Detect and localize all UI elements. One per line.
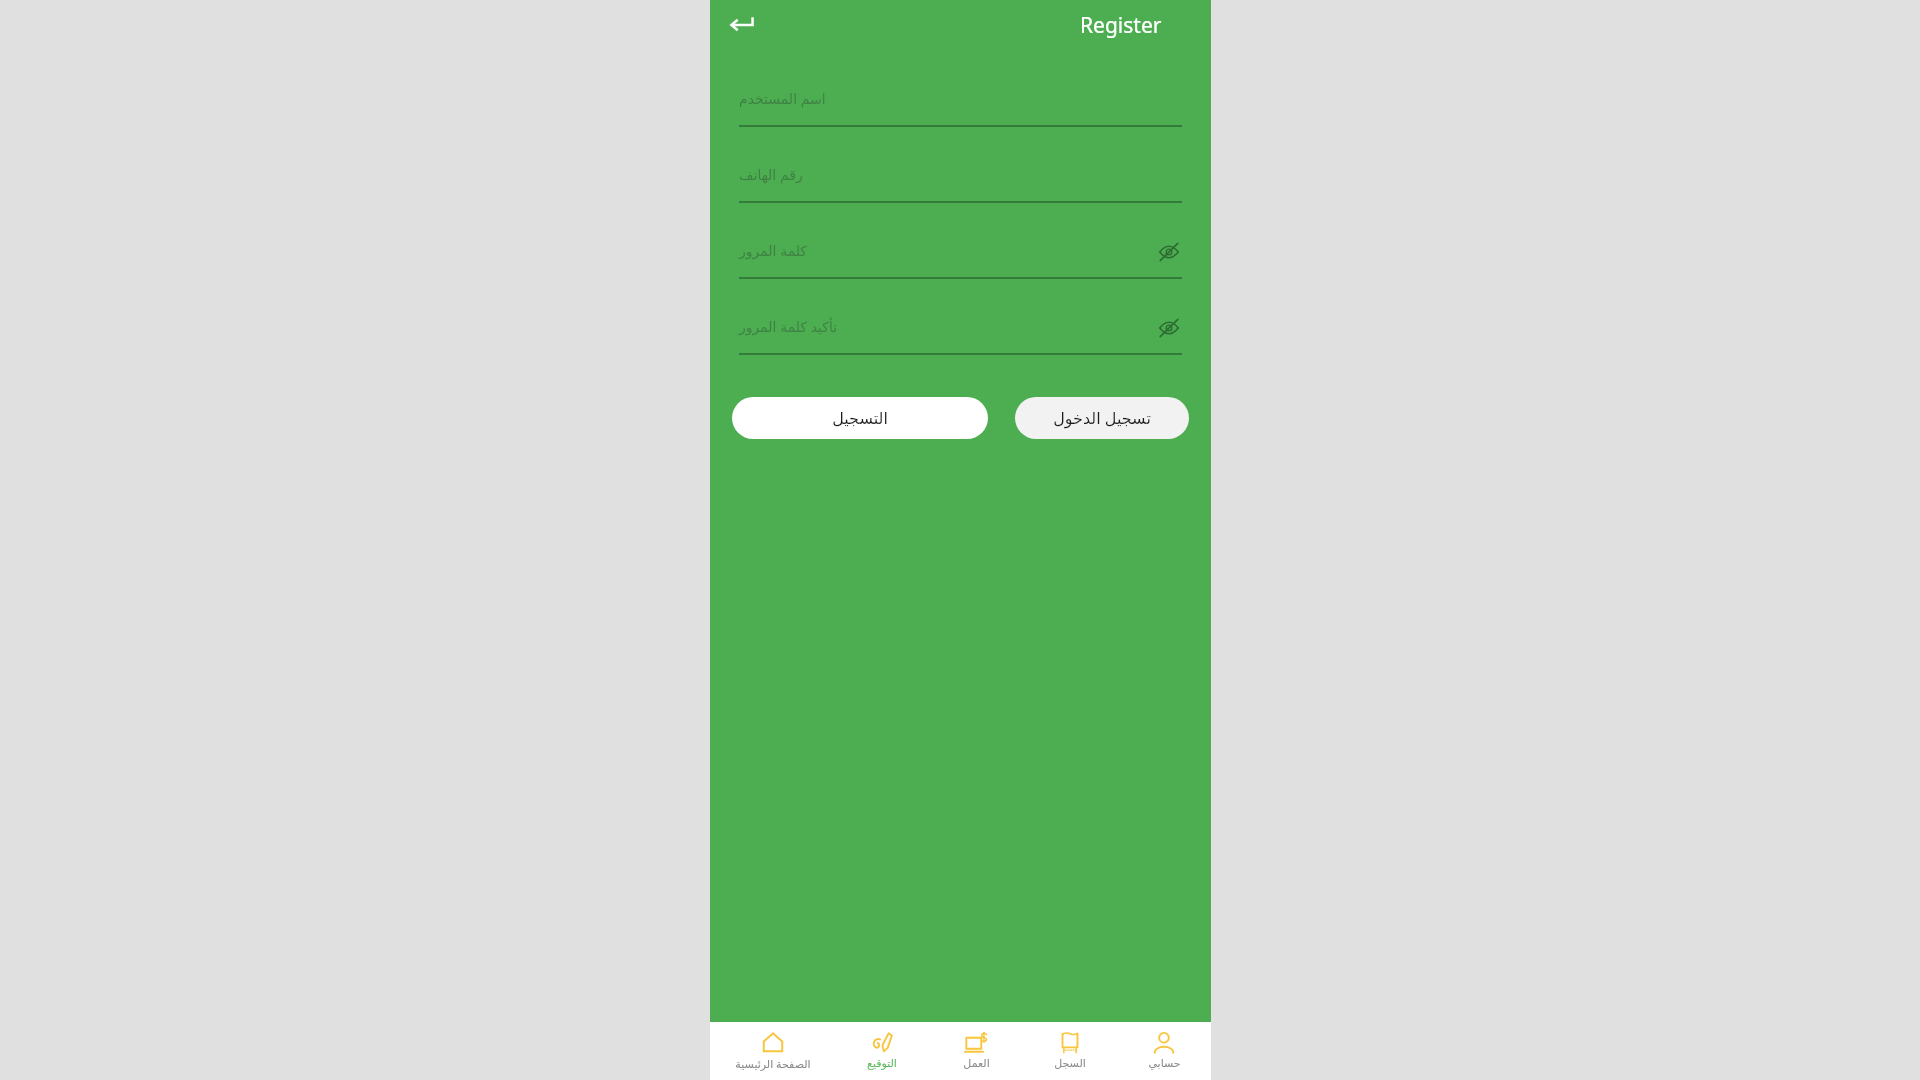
button[interactable]: تأكيد كلمة المرور <box>739 315 1182 355</box>
button[interactable]: اسم المستخدم <box>739 87 1182 127</box>
staticText: السجل <box>1054 1057 1086 1070</box>
staticText: اسم المستخدم <box>739 89 826 108</box>
button[interactable]: Toggle password visibility <box>1156 239 1182 265</box>
button[interactable]: كلمة المرور <box>739 239 1182 279</box>
staticText: العمل <box>963 1057 990 1070</box>
button[interactable]: تسجيل الدخول <box>1015 397 1189 439</box>
button[interactable]: حسابي <box>1117 1022 1211 1080</box>
button[interactable]: الصفحة الرئيسية <box>710 1022 835 1080</box>
button[interactable]: رقم الهاتف <box>739 163 1182 203</box>
staticText: Register <box>1080 11 1162 40</box>
button[interactable]: Toggle password visibility <box>1156 315 1182 341</box>
staticText: رقم الهاتف <box>739 165 803 184</box>
staticText: التسجيل <box>832 409 888 428</box>
button[interactable]: العمل <box>929 1022 1023 1080</box>
staticText: الصفحة الرئيسية <box>735 1056 811 1071</box>
button[interactable]: السجل <box>1023 1022 1117 1080</box>
staticText: التوقيع <box>867 1057 897 1070</box>
button[interactable]: التسجيل <box>732 397 988 439</box>
staticText: حسابي <box>1148 1057 1181 1070</box>
staticText: تسجيل الدخول <box>1053 407 1151 429</box>
staticText: تأكيد كلمة المرور <box>739 317 838 336</box>
button[interactable]: Back <box>724 7 760 43</box>
staticText: كلمة المرور <box>739 241 808 260</box>
button[interactable]: التوقيع <box>835 1022 929 1080</box>
